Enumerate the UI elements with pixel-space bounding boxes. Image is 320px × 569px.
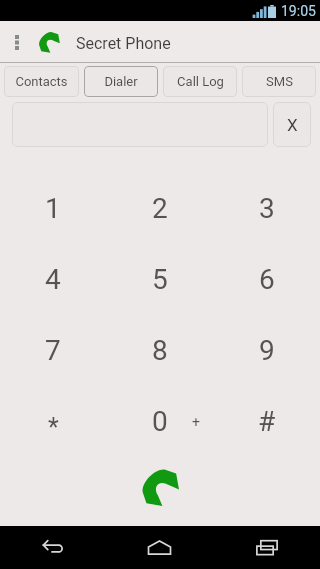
staticText: 0: [152, 405, 168, 438]
button[interactable]: 9: [213, 315, 320, 386]
button[interactable]: Contacts: [4, 66, 79, 97]
staticText: 5: [152, 263, 168, 296]
button[interactable]: 6: [213, 244, 320, 315]
staticText: 9: [259, 334, 275, 367]
button[interactable]: 1: [0, 173, 106, 244]
staticText: Secret Phone: [76, 34, 171, 53]
staticText: #: [258, 405, 276, 438]
button[interactable]: Call Log: [163, 66, 237, 97]
button[interactable]: 8: [106, 315, 213, 386]
staticText: X: [287, 115, 298, 135]
staticText: +: [192, 414, 200, 430]
button[interactable]: 0: [106, 386, 213, 457]
staticText: 7: [45, 334, 61, 367]
button[interactable]: Back: [0, 526, 106, 569]
staticText: Dialer: [104, 74, 138, 89]
staticText: SMS: [266, 74, 293, 89]
button[interactable]: #: [213, 386, 320, 457]
staticText: 3: [259, 192, 275, 225]
button[interactable]: 7: [0, 315, 106, 386]
button[interactable]: 2: [106, 173, 213, 244]
staticText: 4: [45, 263, 61, 296]
button[interactable]: *: [0, 386, 106, 457]
staticText: 2: [152, 192, 168, 225]
button[interactable]: X: [273, 102, 311, 147]
button[interactable]: [12, 102, 268, 147]
button[interactable]: 5: [106, 244, 213, 315]
button[interactable]: 3: [213, 173, 320, 244]
staticText: Call Log: [177, 74, 224, 89]
button[interactable]: More options: [0, 21, 34, 63]
button[interactable]: Dialer: [84, 66, 158, 97]
button[interactable]: Call: [131, 464, 189, 510]
staticText: Contacts: [15, 74, 68, 89]
staticText: 1: [45, 192, 61, 225]
staticText: 8: [152, 334, 168, 367]
staticText: 19:05: [281, 3, 316, 19]
button[interactable]: SMS: [242, 66, 316, 97]
staticText: *: [48, 413, 59, 442]
button[interactable]: Recent apps: [213, 526, 320, 569]
staticText: 6: [259, 263, 275, 296]
button[interactable]: Home: [106, 526, 213, 569]
button[interactable]: 4: [0, 244, 106, 315]
